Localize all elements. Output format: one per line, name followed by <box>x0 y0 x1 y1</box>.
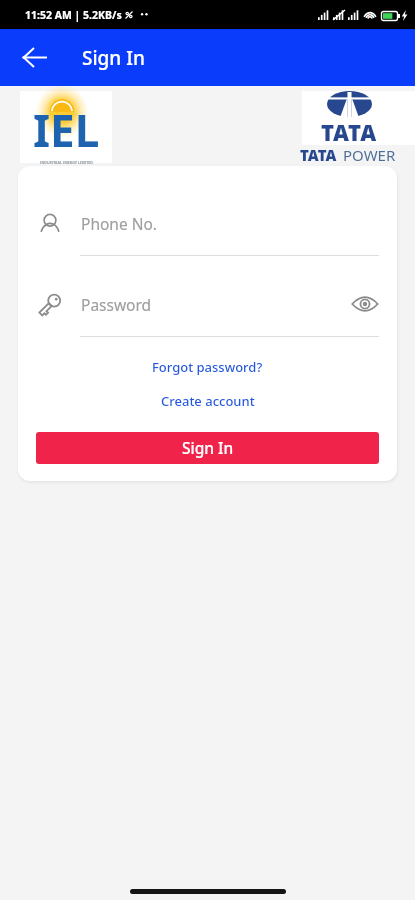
button[interactable]: Show password <box>351 290 379 318</box>
staticText: Sign In <box>82 45 145 71</box>
staticText: TATA <box>300 145 337 165</box>
staticText: INDUSTRIAL ENERGY LIMITED <box>40 160 93 165</box>
button[interactable]: Create account <box>155 390 261 412</box>
staticText: Sign In <box>182 437 234 458</box>
staticText: IEL <box>33 100 100 160</box>
staticText: Phone No. <box>81 213 379 234</box>
button[interactable]: Sign In <box>36 432 379 464</box>
staticText: 11:52 AM | 5.2KB/s <box>25 8 122 22</box>
button[interactable]: Back <box>14 37 55 78</box>
staticText: POWER <box>343 145 396 165</box>
staticText: Password <box>81 294 351 315</box>
button[interactable]: Forgot password? <box>146 356 269 378</box>
staticText: TATA <box>321 117 377 146</box>
